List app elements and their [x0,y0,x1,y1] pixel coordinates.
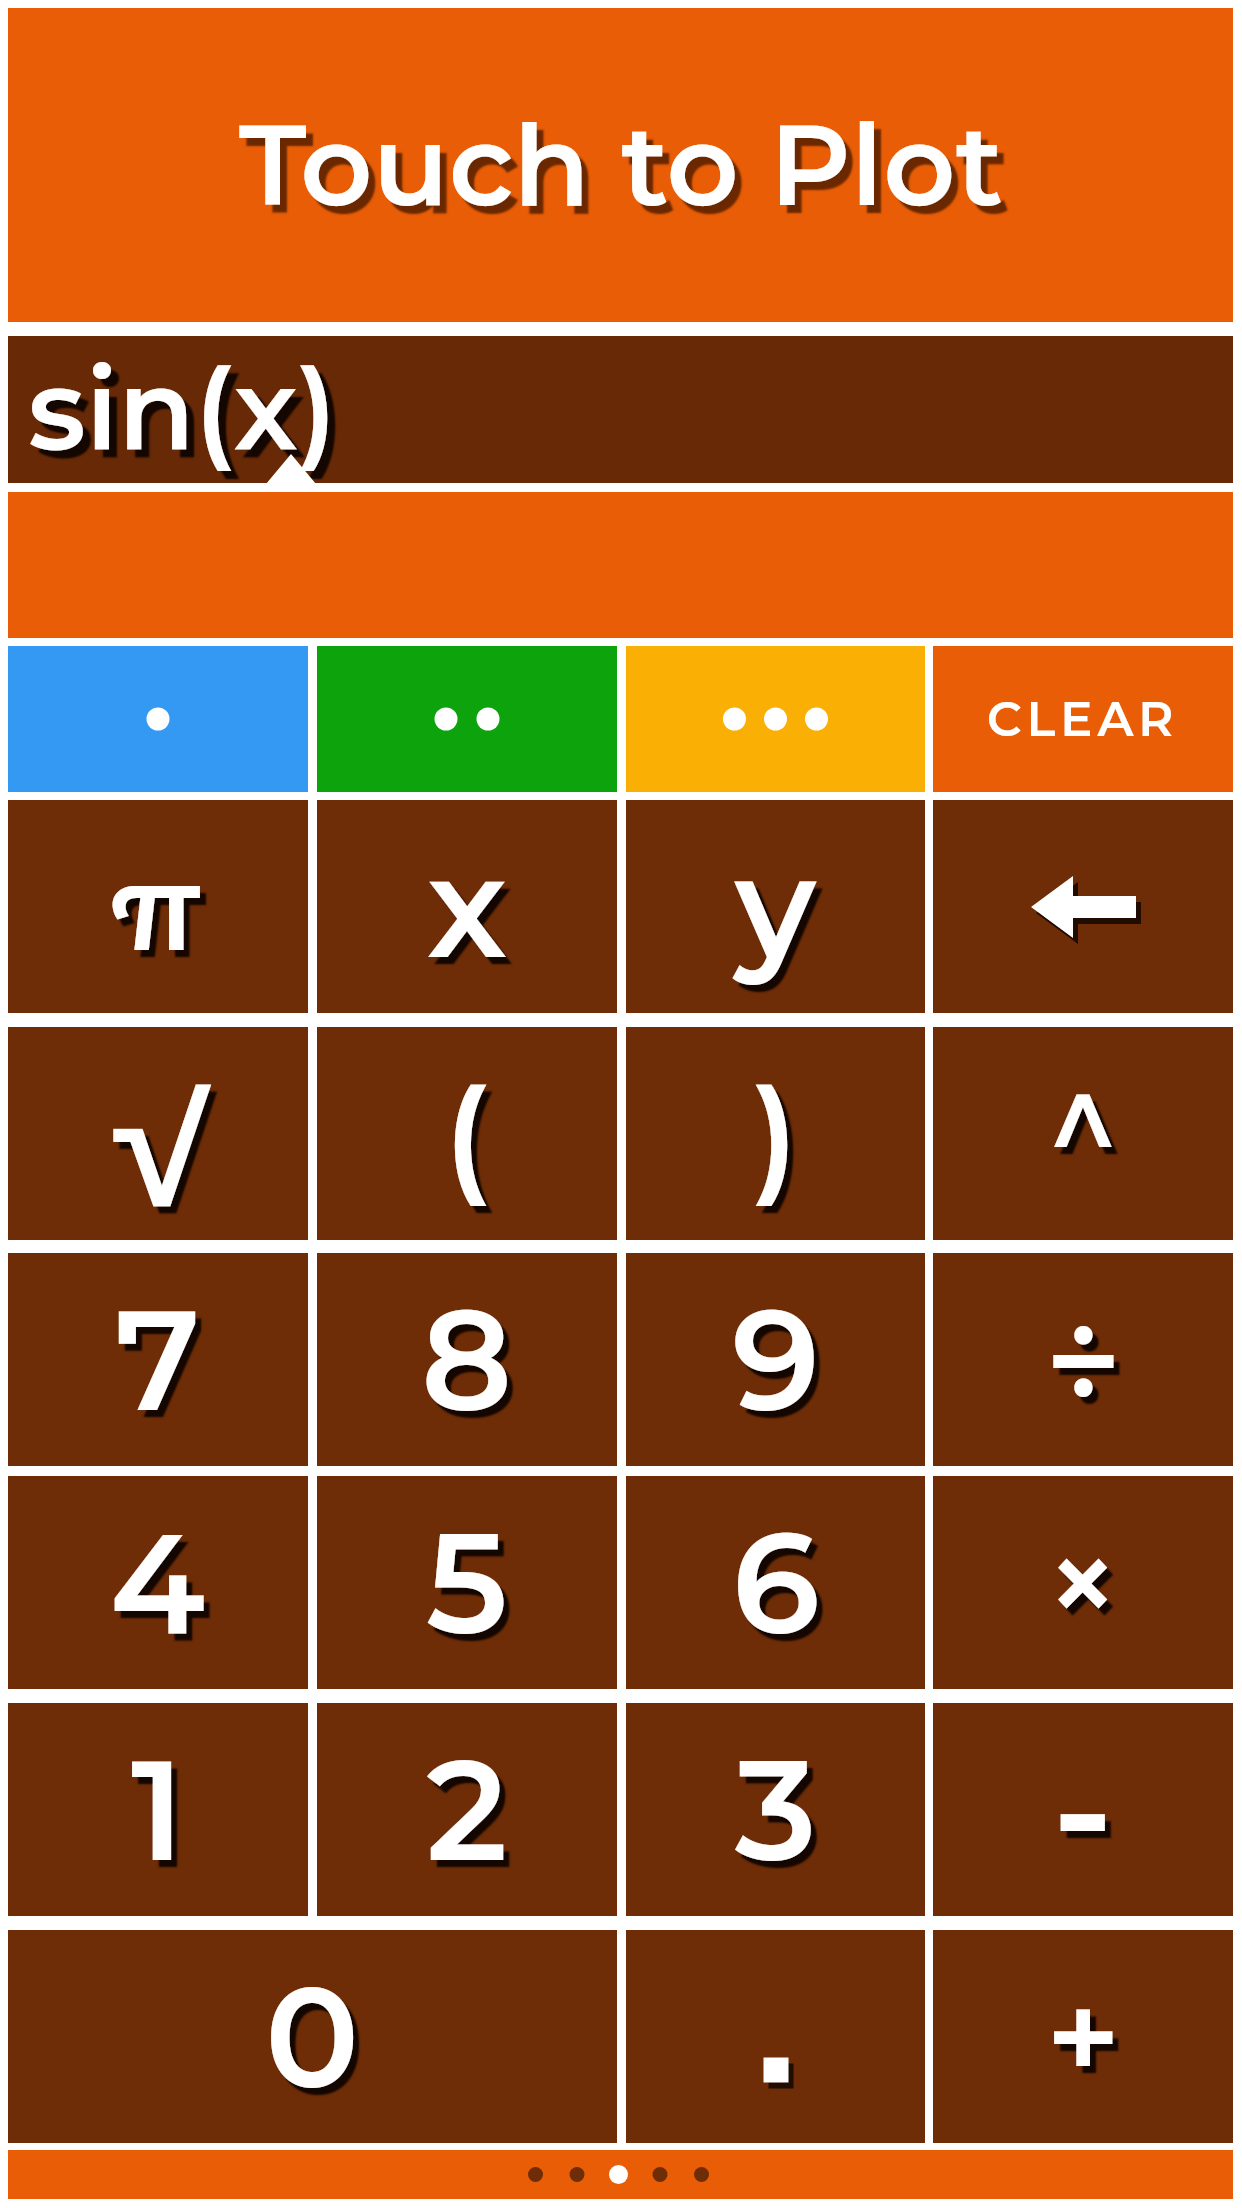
staticText: 3 [735,1724,817,1895]
button[interactable] [626,1930,925,2143]
button[interactable]: 3 [626,1703,925,1916]
staticText: ) [753,1055,799,1213]
staticText: 2 [426,1724,508,1895]
button[interactable]: ÷ [933,1253,1233,1466]
button[interactable]: 6 [626,1476,925,1689]
staticText: 0 [265,1951,360,2122]
button[interactable]: 1 [8,1703,308,1916]
staticText: Touch to Plot [239,97,1003,234]
button[interactable] [626,646,925,792]
button[interactable]: 8 [317,1253,617,1466]
staticText: ^ [1046,1044,1120,1196]
button[interactable] [8,646,308,792]
button[interactable] [317,646,617,792]
staticText: 5 [426,1497,508,1668]
staticText: 7 [115,1274,201,1445]
button[interactable]: 2 [317,1703,617,1916]
button[interactable]: Touch to Plot [8,8,1233,322]
button[interactable]: π [8,800,308,1013]
staticText: - [1052,1712,1114,1907]
button[interactable]: ) [626,1027,925,1240]
button[interactable]: + [933,1930,1233,2143]
button[interactable]: 7 [8,1253,308,1466]
button[interactable]: √ [8,1027,308,1240]
staticText: π [114,834,202,980]
button[interactable]: ( [317,1027,617,1240]
staticText: × [1046,1507,1120,1658]
staticText: sin(x) [28,341,337,478]
button[interactable]: 5 [317,1476,617,1689]
button[interactable]: ^ [933,1027,1233,1240]
staticText: ( [444,1055,490,1213]
button[interactable]: sin(x) [8,336,1233,483]
staticText: + [1046,1960,1121,2114]
button[interactable]: 4 [8,1476,308,1689]
button[interactable]: y [626,800,925,1013]
staticText: x [427,821,508,992]
button[interactable]: 0 [8,1930,617,2143]
button[interactable]: 9 [626,1253,925,1466]
staticText: ÷ [1045,1281,1122,1439]
staticText: 1 [131,1724,185,1895]
staticText: 4 [110,1497,206,1668]
staticText: 9 [732,1274,820,1445]
button[interactable]: - [933,1703,1233,1916]
staticText: 6 [732,1497,820,1668]
button[interactable] [8,2150,1233,2199]
button[interactable]: x [317,800,617,1013]
staticText: y [735,821,816,992]
staticText: CLEAR [987,690,1179,749]
staticText: 8 [421,1274,513,1445]
button[interactable]: × [933,1476,1233,1689]
staticText: √ [105,1055,211,1213]
button[interactable] [933,800,1233,1013]
button[interactable]: CLEAR [933,646,1233,792]
